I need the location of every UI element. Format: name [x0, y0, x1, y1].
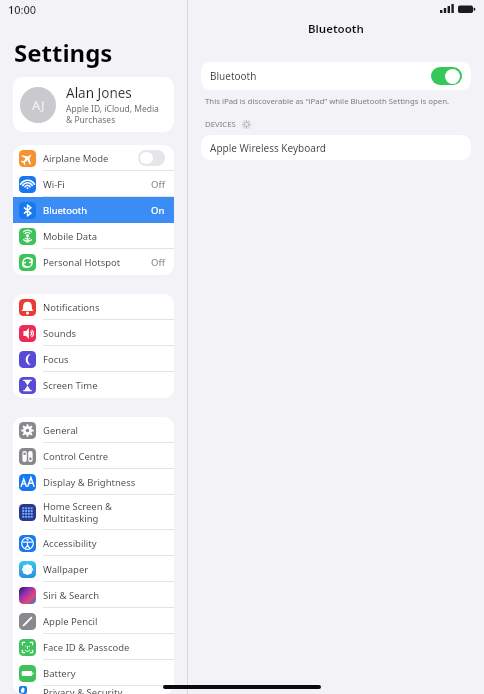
- staticText: Apple Wireless Keyboard: [210, 141, 326, 155]
- staticText: Bluetooth: [308, 21, 364, 37]
- button[interactable]: Bluetooth: [201, 62, 471, 90]
- staticText: Siri & Search: [43, 589, 100, 602]
- button[interactable]: Apple Pencil: [13, 608, 174, 634]
- button[interactable]: Wallpaper: [13, 556, 174, 582]
- staticText: Wi-Fi: [43, 178, 65, 191]
- staticText: Bluetooth: [210, 69, 257, 83]
- staticText: Mobile Data: [43, 230, 97, 243]
- button[interactable]: Personal Hotspot: [13, 249, 174, 275]
- staticText: Focus: [43, 353, 69, 366]
- staticText: This iPad is discoverable as “iPad” whil…: [205, 96, 450, 107]
- button[interactable]: Wi-Fi: [13, 171, 174, 197]
- staticText: Off: [151, 178, 165, 191]
- staticText: General: [43, 424, 79, 437]
- staticText: Notifications: [43, 301, 100, 314]
- staticText: Wallpaper: [43, 563, 89, 576]
- button[interactable]: Focus: [13, 346, 174, 372]
- other: Bluetooth toggle on: [431, 67, 462, 85]
- button[interactable]: Mobile Data: [13, 223, 174, 249]
- button[interactable]: AJ: [13, 77, 174, 132]
- button[interactable]: Control Centre: [13, 443, 174, 469]
- staticText: Face ID & Passcode: [43, 641, 130, 654]
- button[interactable]: Screen Time: [13, 372, 174, 398]
- staticText: Alan Jones: [66, 84, 132, 102]
- button[interactable]: Battery: [13, 660, 174, 686]
- staticText: Screen Time: [43, 379, 98, 392]
- staticText: Display & Brightness: [43, 476, 136, 489]
- button[interactable]: Accessibility: [13, 530, 174, 556]
- staticText: Battery: [43, 667, 76, 680]
- button[interactable]: Airplane Mode toggle: [138, 150, 165, 166]
- button[interactable]: Notifications: [13, 294, 174, 320]
- staticText: Home Screen & Multitasking: [43, 500, 113, 525]
- button[interactable]: Airplane Mode: [13, 145, 174, 171]
- staticText: Personal Hotspot: [43, 256, 121, 269]
- button[interactable]: Face ID & Passcode: [13, 634, 174, 660]
- staticText: Settings: [14, 36, 113, 69]
- staticText: 10:00: [8, 2, 37, 17]
- staticText: Privacy & Security: [43, 686, 123, 694]
- staticText: AJ: [32, 96, 45, 114]
- button[interactable]: Privacy & Security: [13, 686, 174, 694]
- button[interactable]: Apple Wireless Keyboard: [201, 135, 471, 160]
- button[interactable]: Home Screen & Multitasking: [13, 495, 174, 530]
- button[interactable]: Siri & Search: [13, 582, 174, 608]
- button[interactable]: Bluetooth: [13, 197, 174, 223]
- staticText: DEVICES: [205, 119, 236, 130]
- button[interactable]: General: [13, 417, 174, 443]
- staticText: Airplane Mode: [43, 152, 109, 165]
- staticText: Accessibility: [43, 537, 97, 550]
- button[interactable]: Display & Brightness: [13, 469, 174, 495]
- staticText: Apple Pencil: [43, 615, 98, 628]
- staticText: Control Centre: [43, 450, 109, 463]
- staticText: On: [151, 204, 165, 217]
- button[interactable]: Sounds: [13, 320, 174, 346]
- staticText: Apple ID, iCloud, Media & Purchases: [66, 103, 159, 125]
- staticText: Off: [151, 256, 165, 269]
- staticText: Sounds: [43, 327, 77, 340]
- staticText: Bluetooth: [43, 204, 88, 217]
